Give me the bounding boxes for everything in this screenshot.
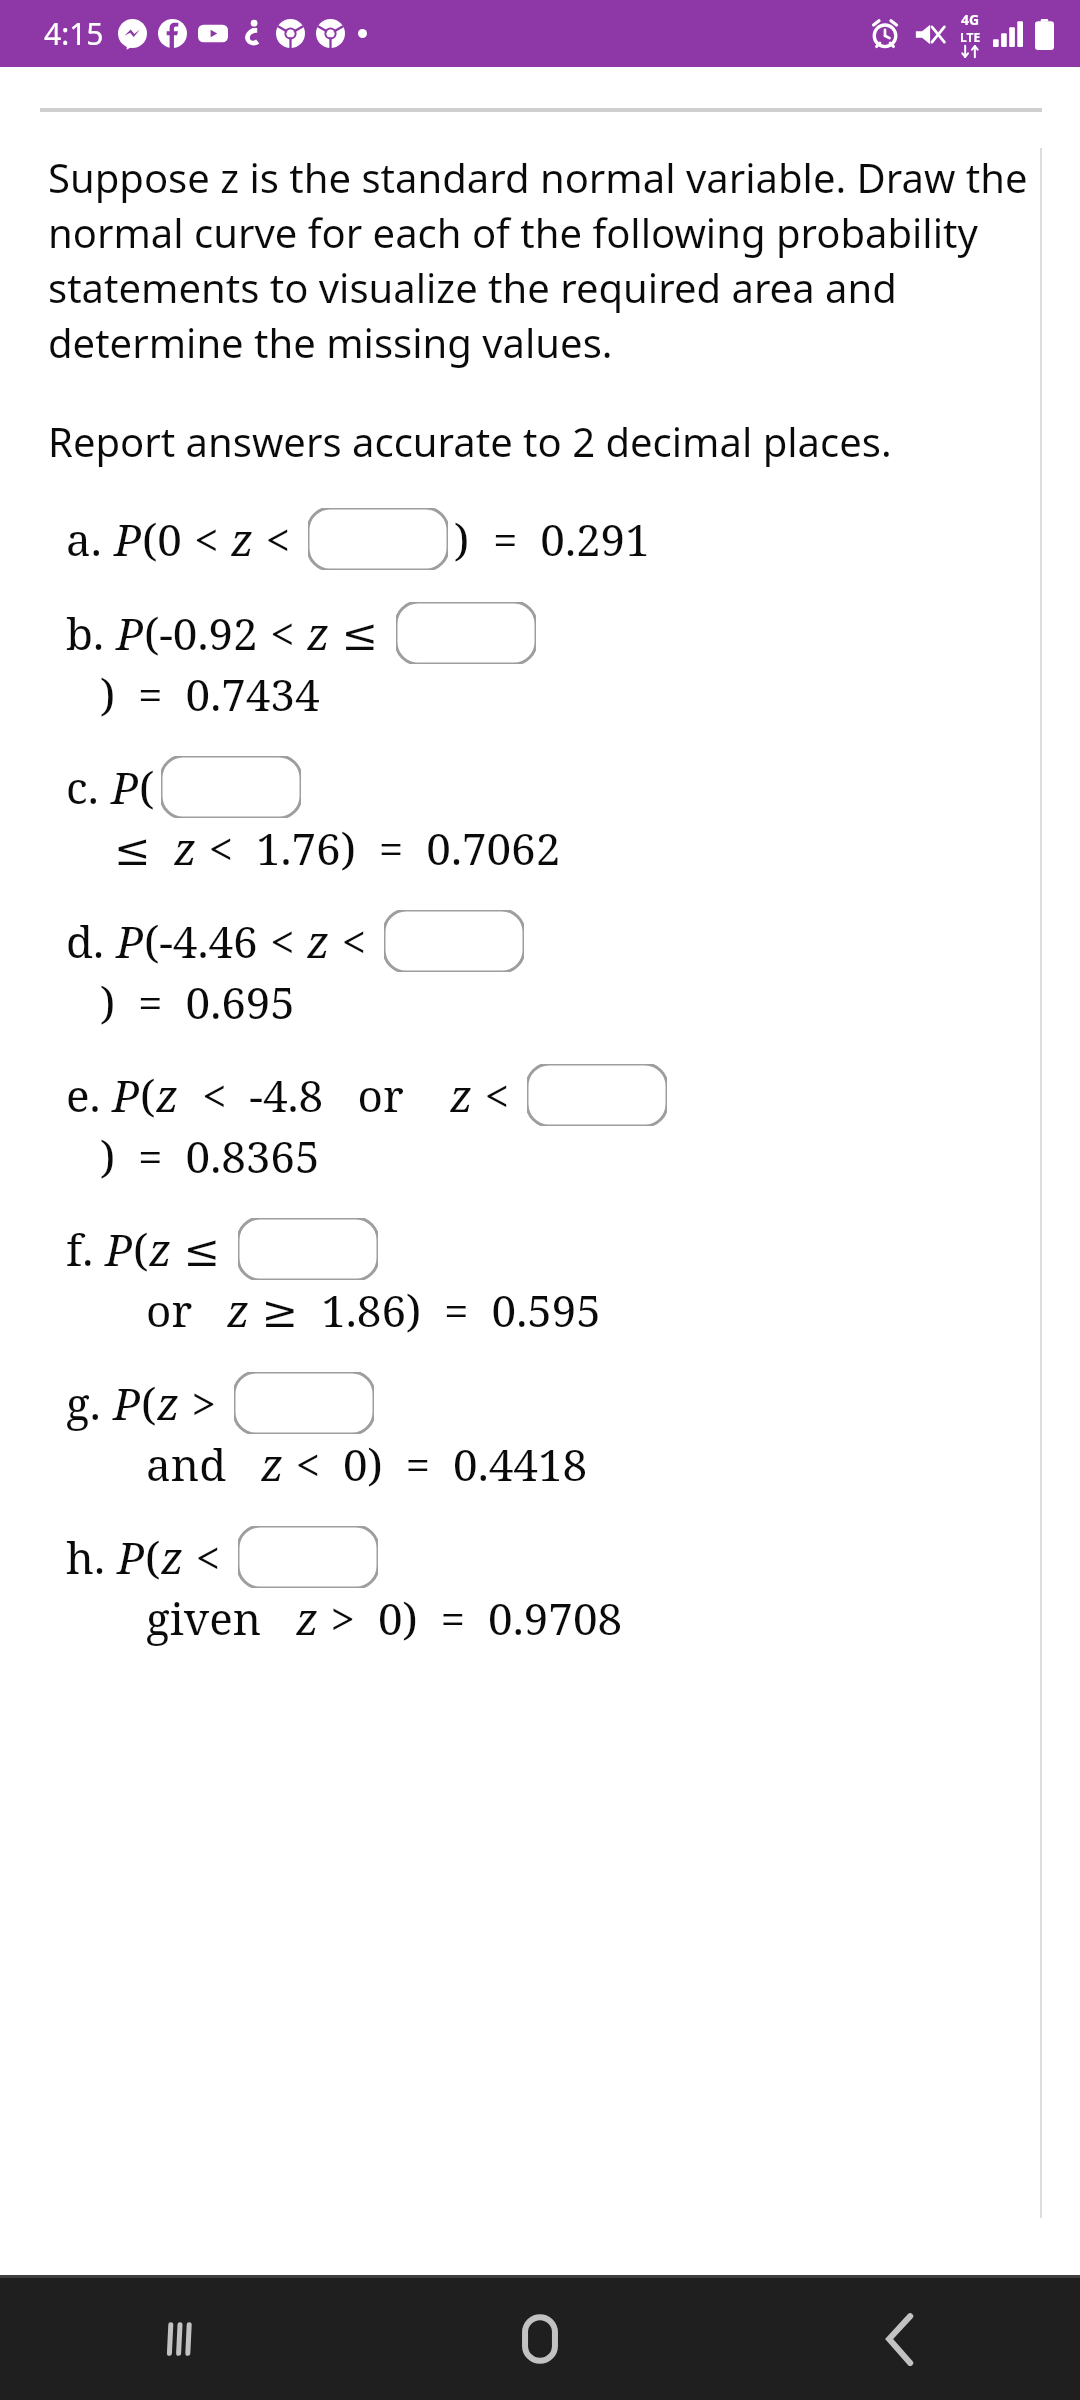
staticText: z bbox=[157, 1373, 180, 1433]
button[interactable]: Answer input bbox=[238, 1218, 378, 1280]
staticText: (-4.46 bbox=[144, 911, 270, 971]
staticText: z bbox=[174, 818, 197, 878]
staticText: ) = 0.7434 bbox=[100, 664, 320, 724]
staticText: z bbox=[450, 1065, 473, 1125]
button[interactable]: Answer input bbox=[234, 1372, 374, 1434]
staticText: P bbox=[114, 509, 142, 569]
staticText: z bbox=[307, 603, 330, 663]
staticText: ( bbox=[141, 1373, 157, 1433]
staticText: P bbox=[117, 1527, 145, 1587]
staticText: ≤ bbox=[172, 1219, 232, 1279]
staticText: ( bbox=[145, 1527, 161, 1587]
staticText: < 0) = 0.4418 bbox=[284, 1434, 588, 1494]
staticText: z bbox=[227, 1280, 250, 1340]
staticText: z bbox=[231, 509, 254, 569]
staticText: P bbox=[113, 1373, 141, 1433]
staticText: < bbox=[270, 603, 307, 663]
staticText: P bbox=[112, 1065, 140, 1125]
staticText: c. bbox=[66, 757, 111, 817]
staticText: ( bbox=[133, 1219, 149, 1279]
button[interactable]: Answer input bbox=[527, 1064, 667, 1126]
button[interactable]: Back bbox=[720, 2278, 1080, 2400]
staticText: (-0.92 bbox=[144, 603, 270, 663]
staticText: Report answers accurate to 2 decimal pla… bbox=[48, 414, 892, 468]
button[interactable]: Answer input bbox=[161, 756, 301, 818]
staticText: ≤ bbox=[114, 818, 174, 878]
staticText: a. bbox=[66, 509, 114, 569]
staticText: g. bbox=[66, 1373, 113, 1433]
staticText: P bbox=[116, 603, 144, 663]
staticText: ( bbox=[140, 1065, 156, 1125]
staticText: or bbox=[146, 1280, 227, 1340]
staticText: < 1.76) = 0.7062 bbox=[197, 818, 561, 878]
staticText: z bbox=[261, 1434, 284, 1494]
staticText: d. bbox=[66, 911, 116, 971]
staticText: given bbox=[146, 1588, 296, 1648]
staticText: z bbox=[161, 1527, 184, 1587]
staticText: < bbox=[254, 509, 302, 569]
button[interactable]: Answer input bbox=[238, 1526, 378, 1588]
staticText: LTE bbox=[960, 29, 981, 45]
staticText: < bbox=[270, 911, 307, 971]
staticText: z bbox=[307, 911, 330, 971]
staticText: ≥ 1.86) = 0.595 bbox=[250, 1280, 601, 1340]
staticText: > bbox=[180, 1373, 228, 1433]
staticText: f. bbox=[66, 1219, 105, 1279]
button[interactable]: Answer input bbox=[308, 508, 448, 570]
staticText: ) = 0.8365 bbox=[100, 1126, 320, 1186]
staticText: = 0.291 bbox=[470, 509, 650, 569]
staticText: 4:15 bbox=[44, 13, 104, 54]
staticText: P bbox=[105, 1219, 133, 1279]
staticText: P bbox=[116, 911, 144, 971]
staticText: z bbox=[149, 1219, 172, 1279]
button[interactable]: Home bbox=[360, 2278, 720, 2400]
staticText: Suppose z is the standard normal variabl… bbox=[48, 150, 1056, 370]
staticText: (0 bbox=[142, 509, 194, 569]
staticText: < -4.8 or bbox=[179, 1065, 450, 1125]
staticText: ) bbox=[454, 509, 470, 569]
staticText: < bbox=[330, 911, 378, 971]
staticText: > 0) = 0.9708 bbox=[319, 1588, 623, 1648]
staticText: z bbox=[296, 1588, 319, 1648]
staticText: e. bbox=[66, 1065, 112, 1125]
button[interactable]: Answer input bbox=[396, 602, 536, 664]
staticText: ) = 0.695 bbox=[100, 972, 295, 1032]
staticText: h. bbox=[66, 1527, 117, 1587]
staticText: b. bbox=[66, 603, 116, 663]
button[interactable]: Recent apps bbox=[0, 2278, 360, 2400]
button[interactable]: Answer input bbox=[384, 910, 524, 972]
staticText: and bbox=[146, 1434, 261, 1494]
staticText: ( bbox=[139, 757, 155, 817]
staticText: < bbox=[194, 509, 231, 569]
staticText: ≤ bbox=[330, 603, 390, 663]
staticText: P bbox=[111, 757, 139, 817]
staticText: < bbox=[473, 1065, 521, 1125]
staticText: 4G bbox=[961, 10, 980, 29]
staticText: < bbox=[184, 1527, 232, 1587]
staticText: z bbox=[156, 1065, 179, 1125]
